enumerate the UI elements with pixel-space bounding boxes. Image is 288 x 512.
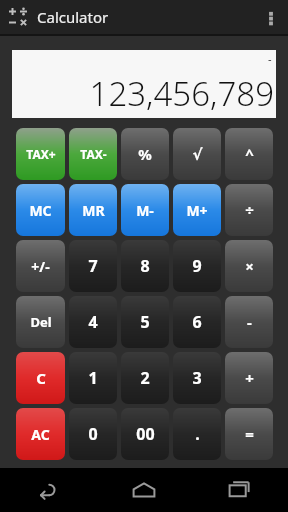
staticText: TAX+ (26, 146, 56, 162)
staticText: ÷ (245, 200, 254, 220)
staticText: 4 (88, 311, 98, 333)
button[interactable]: TAX- (69, 128, 117, 180)
staticText: Calculator (37, 7, 109, 27)
staticText: Del (30, 313, 52, 331)
button[interactable]: = (225, 408, 273, 460)
staticText: = (245, 424, 254, 444)
staticText: 5 (140, 311, 150, 333)
button[interactable]: M+ (173, 184, 221, 236)
button[interactable]: Del (16, 296, 65, 348)
staticText: MR (82, 201, 105, 220)
staticText: - (268, 51, 272, 66)
button[interactable]: 00 (121, 408, 169, 460)
staticText: . (195, 423, 200, 445)
button[interactable]: 7 (69, 240, 117, 292)
staticText: MC (29, 201, 52, 220)
staticText: M+ (186, 201, 208, 220)
button[interactable]: % (121, 128, 169, 180)
staticText: 00 (136, 423, 155, 445)
staticText: +/- (31, 257, 50, 276)
button[interactable]: More options (254, 0, 288, 34)
button[interactable]: 4 (69, 296, 117, 348)
button[interactable]: +/- (16, 240, 65, 292)
button[interactable]: ^ (225, 128, 273, 180)
staticText: 3 (192, 367, 202, 389)
staticText: ^ (245, 144, 254, 164)
button[interactable]: 6 (173, 296, 221, 348)
button[interactable]: 8 (121, 240, 169, 292)
button[interactable]: 3 (173, 352, 221, 404)
button[interactable]: - (225, 296, 273, 348)
staticText: 2 (140, 367, 150, 389)
staticText: + (245, 368, 254, 388)
button[interactable]: MC (16, 184, 65, 236)
staticText: AC (31, 425, 50, 444)
button[interactable]: × (225, 240, 273, 292)
staticText: 9 (192, 255, 202, 277)
button[interactable]: C (16, 352, 65, 404)
button[interactable]: Recent apps (192, 468, 288, 512)
staticText: 0 (88, 423, 98, 445)
button[interactable]: . (173, 408, 221, 460)
staticText: C (36, 368, 46, 388)
button[interactable]: Home (96, 468, 192, 512)
button[interactable]: 5 (121, 296, 169, 348)
staticText: M- (136, 201, 154, 220)
staticText: 8 (140, 255, 150, 277)
button[interactable]: 9 (173, 240, 221, 292)
staticText: 6 (192, 311, 202, 333)
button[interactable]: 2 (121, 352, 169, 404)
button[interactable]: AC (16, 408, 65, 460)
staticText: TAX- (80, 146, 107, 162)
staticText: % (138, 144, 152, 164)
staticText: 1 (88, 367, 98, 389)
button[interactable]: √ (173, 128, 221, 180)
button[interactable]: 1 (69, 352, 117, 404)
staticText: 123,456,789 (89, 71, 274, 116)
button[interactable]: + (225, 352, 273, 404)
button[interactable]: TAX+ (16, 128, 65, 180)
button[interactable]: Back (0, 468, 96, 512)
button[interactable]: ÷ (225, 184, 273, 236)
staticText: √ (192, 146, 203, 163)
button[interactable]: 0 (69, 408, 117, 460)
button[interactable]: MR (69, 184, 117, 236)
staticText: - (247, 312, 252, 332)
staticText: 7 (88, 255, 98, 277)
button[interactable]: M- (121, 184, 169, 236)
staticText: × (245, 256, 254, 276)
